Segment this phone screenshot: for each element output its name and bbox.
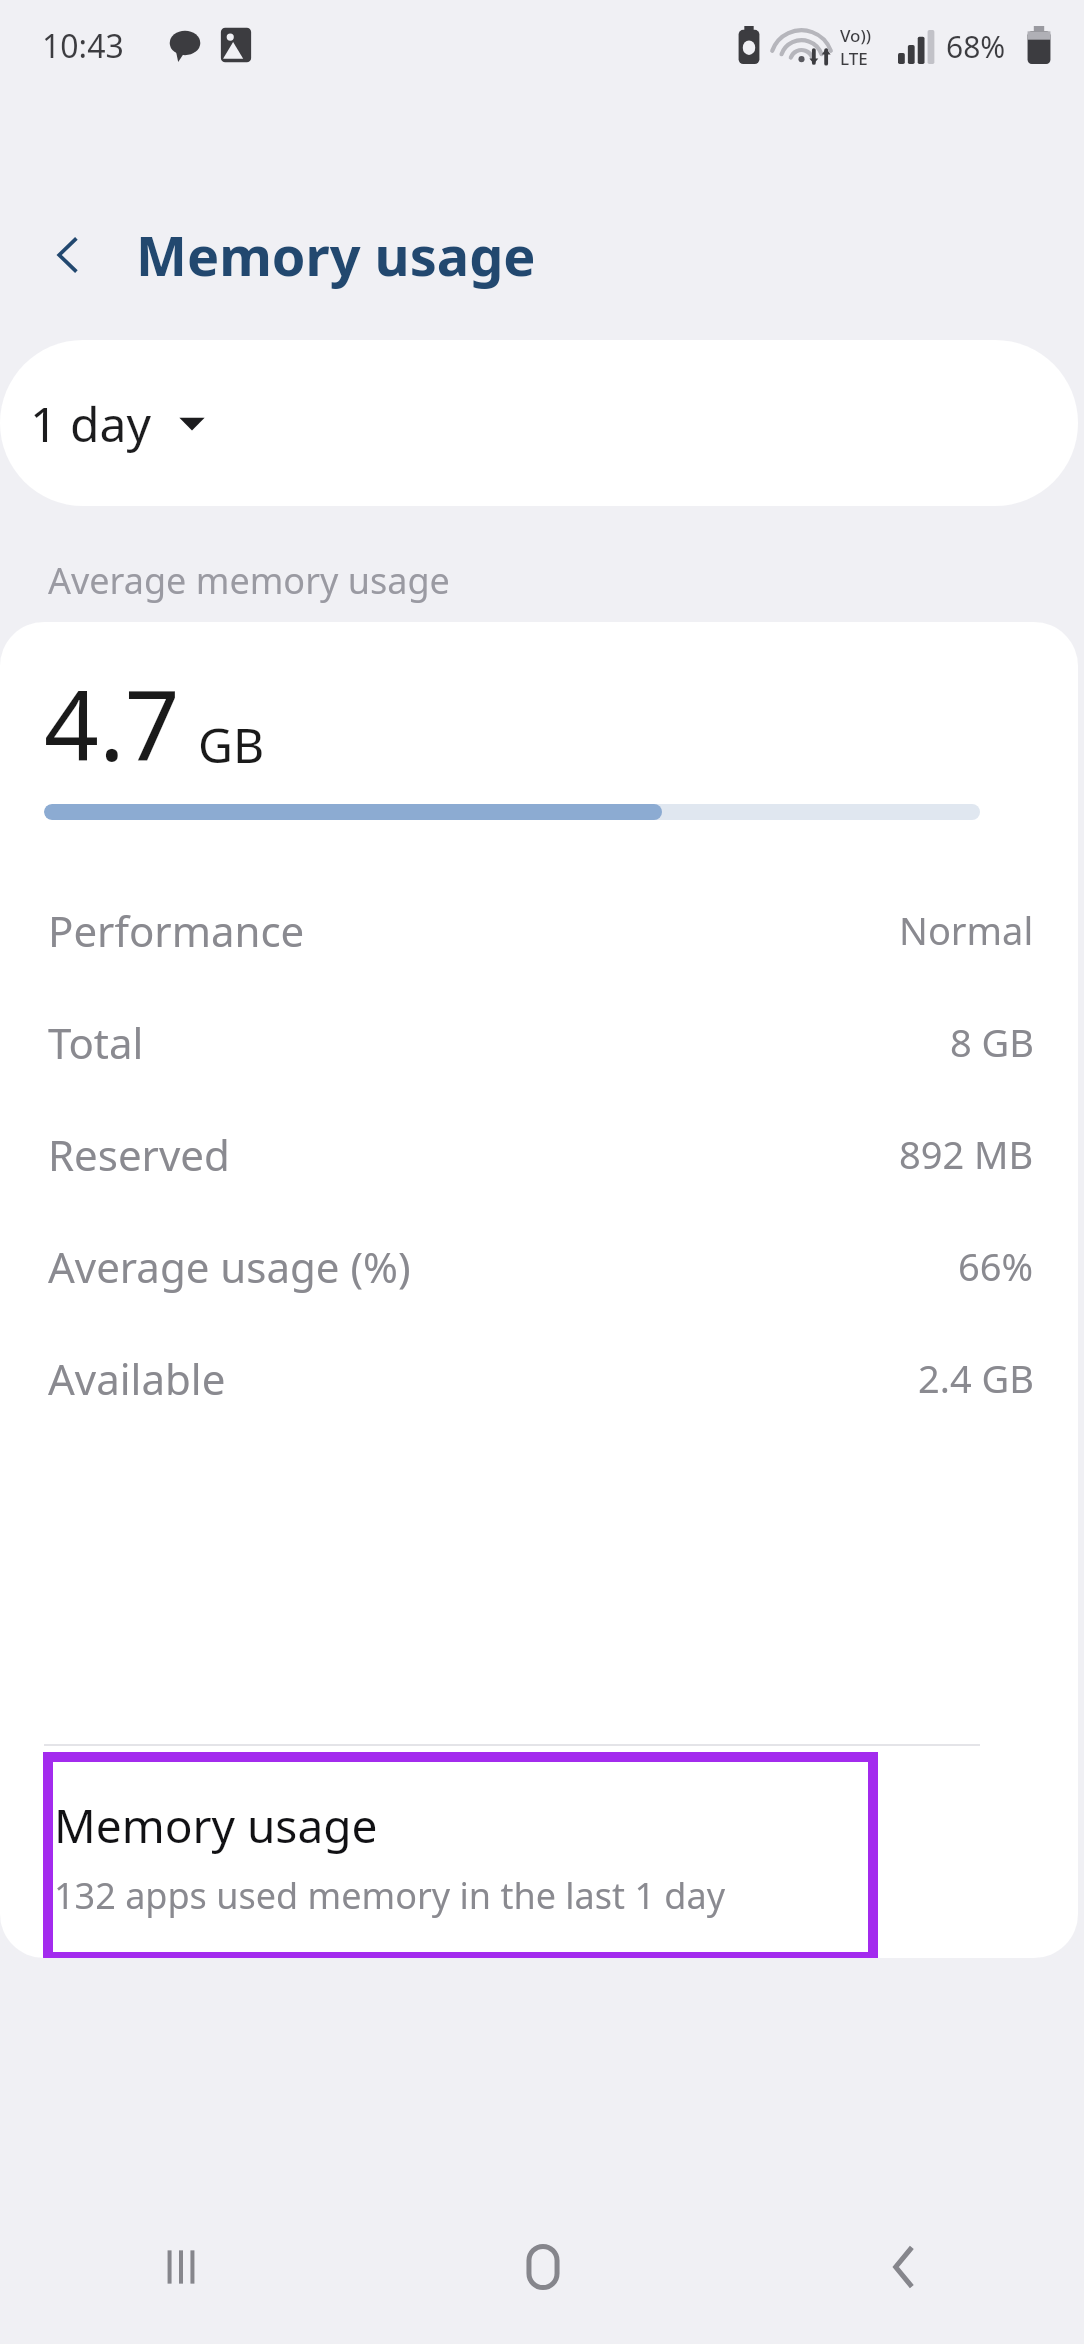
button[interactable]: Total [0,986,1078,1098]
staticText: 132 apps used memory in the last 1 day [54,1871,726,1920]
staticText: Reserved [48,1126,230,1183]
staticText: Average memory usage [48,556,450,605]
staticText: Total [48,1014,144,1071]
staticText: GB [198,712,265,777]
staticText: Memory usage [54,1794,378,1857]
staticText: Average usage (%) [48,1238,411,1295]
button[interactable]: Available [0,1322,1078,1434]
button[interactable]: Home [362,2190,723,2344]
staticText: 8 GB [950,1016,1034,1068]
button[interactable]: Back [24,211,112,299]
staticText: 1 day [30,391,151,456]
button[interactable]: Performance [0,874,1078,986]
staticText: LTE [840,47,868,70]
staticText: Normal [899,904,1034,956]
button[interactable]: Reserved [0,1098,1078,1210]
staticText: 68% [946,26,1006,67]
staticText: 2.4 GB [918,1352,1034,1404]
staticText: Performance [48,902,305,959]
staticText: Vo)) [840,24,872,47]
button[interactable]: 1 day [0,340,1078,506]
button[interactable]: Recents [0,2190,362,2344]
button[interactable]: Back [723,2190,1084,2344]
staticText: 10:43 [42,24,124,68]
staticText: 66% [958,1240,1034,1292]
button[interactable]: Memory usage [48,1757,873,1957]
staticText: Memory usage [136,218,536,292]
staticText: 892 MB [899,1128,1034,1180]
staticText: Available [48,1350,226,1407]
button[interactable]: Average usage (%) [0,1210,1078,1322]
staticText: 4.7 [44,658,180,789]
